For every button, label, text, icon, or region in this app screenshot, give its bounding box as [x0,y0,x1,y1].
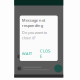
button[interactable]: CLOSE [40,48,51,59]
button[interactable]: New chat [54,64,62,72]
button[interactable]: WAIT [22,51,32,56]
staticText: WAIT [22,51,32,56]
staticText: CLOSE [40,48,51,59]
staticText: Message not responding [22,18,46,28]
staticText: Do you want to close it? [22,30,47,40]
